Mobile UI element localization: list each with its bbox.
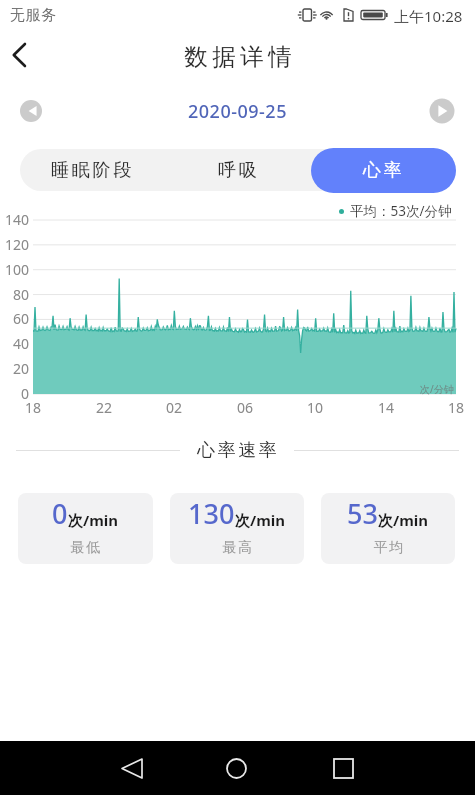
staticText: 无服务: [10, 6, 57, 25]
staticText: 40: [13, 334, 30, 353]
button[interactable]: Next day: [425, 92, 458, 130]
button[interactable]: 53: [321, 493, 455, 564]
staticText: 18: [25, 398, 42, 417]
staticText: 次/min: [235, 510, 286, 530]
staticText: 20: [13, 359, 30, 378]
staticText: 14: [378, 398, 395, 417]
staticText: 最低: [70, 539, 101, 557]
staticText: 平均：53次/分钟: [350, 202, 452, 220]
staticText: 心率: [363, 159, 405, 182]
staticText: 53: [347, 495, 378, 532]
staticText: 80: [13, 285, 30, 304]
staticText: 呼吸: [218, 159, 260, 182]
button[interactable]: Back: [108, 741, 156, 795]
button[interactable]: Previous day: [14, 92, 47, 130]
staticText: 130: [188, 495, 235, 532]
staticText: 2020-09-25: [188, 99, 287, 124]
staticText: 10: [307, 398, 324, 417]
staticText: 次/分钟: [420, 382, 454, 396]
staticText: 120: [5, 235, 30, 254]
button[interactable]: 0: [18, 493, 153, 564]
staticText: 140: [5, 210, 30, 229]
staticText: 上午10:28: [394, 6, 463, 26]
staticText: 睡眠阶段: [51, 159, 135, 182]
staticText: 60: [13, 309, 30, 328]
button[interactable]: 心率: [311, 148, 456, 193]
staticText: 100: [5, 260, 30, 279]
staticText: 次/min: [68, 510, 119, 530]
button[interactable]: 呼吸: [166, 149, 311, 191]
button[interactable]: 睡眠阶段: [20, 149, 166, 191]
button[interactable]: 130: [170, 493, 304, 564]
staticText: 平均: [373, 539, 404, 557]
button[interactable]: Recents: [319, 741, 367, 795]
staticText: 心率速率: [196, 439, 278, 462]
staticText: 18: [448, 398, 465, 417]
staticText: 02: [166, 398, 183, 417]
staticText: 22: [96, 398, 113, 417]
button[interactable]: Back: [0, 32, 39, 78]
staticText: 0: [52, 495, 68, 532]
staticText: 次/min: [378, 510, 429, 530]
button[interactable]: Home: [212, 741, 260, 795]
staticText: 最高: [222, 539, 253, 557]
staticText: 06: [237, 398, 254, 417]
staticText: 0: [21, 384, 30, 403]
staticText: 数据详情: [182, 42, 294, 72]
